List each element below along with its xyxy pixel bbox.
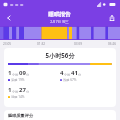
button[interactable]: 1 xyxy=(8,69,60,82)
staticText: 4 xyxy=(60,69,64,77)
staticText: 23:05 xyxy=(3,42,12,46)
staticText: 小时 xyxy=(12,90,19,94)
staticText: 小时 xyxy=(12,73,19,77)
staticText: 小时 xyxy=(64,73,71,77)
staticText: 41 xyxy=(71,69,78,77)
staticText: 1 xyxy=(8,69,12,77)
button[interactable]: Share xyxy=(105,11,118,24)
staticText: 深睡 19% xyxy=(11,78,25,82)
staticText: 09 xyxy=(19,69,26,77)
button[interactable]: Back xyxy=(2,11,15,24)
button[interactable]: 1 xyxy=(8,86,60,99)
staticText: 睡眠质量评分 xyxy=(8,113,34,118)
staticText: 01:32 xyxy=(37,42,46,46)
button[interactable]: 睡眠质量评分 xyxy=(4,110,116,120)
staticText: 5小时56分 xyxy=(8,51,112,59)
staticText: 03:59 xyxy=(74,42,83,46)
staticText: 分 xyxy=(26,73,30,77)
staticText: 分 xyxy=(26,90,30,94)
button[interactable]: 4 xyxy=(60,69,112,82)
staticText: 分 xyxy=(78,73,82,77)
staticText: 2月7日 周三 xyxy=(50,19,69,24)
staticText: 27 xyxy=(19,86,26,94)
button[interactable]: 5小时56分 xyxy=(4,48,116,107)
staticText: 浅睡 67% xyxy=(63,78,77,82)
staticText: 1 xyxy=(8,86,12,94)
staticText: 睡眠报告 xyxy=(48,11,71,18)
button[interactable]: Sleep timeline xyxy=(0,26,120,40)
staticText: 清醒 14% xyxy=(11,95,25,99)
staticText: 06:26 xyxy=(108,42,117,46)
